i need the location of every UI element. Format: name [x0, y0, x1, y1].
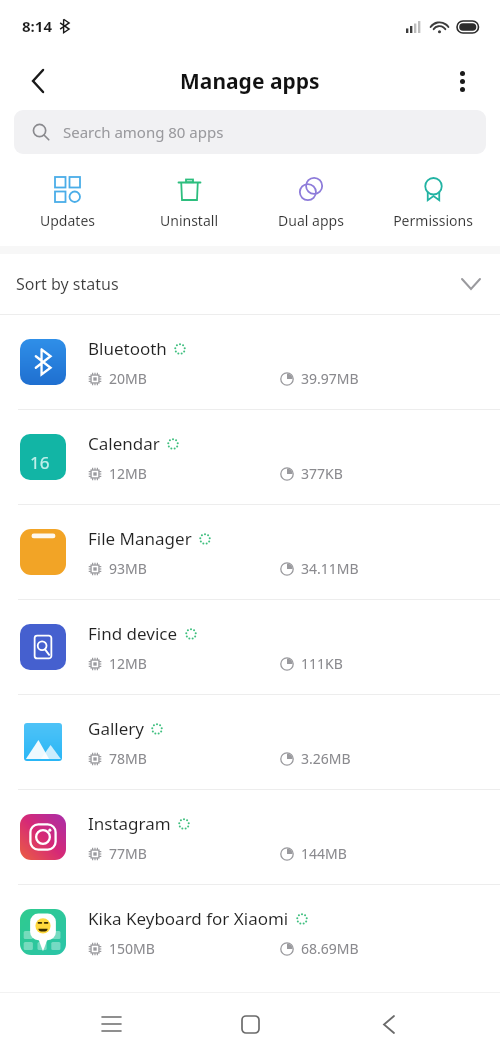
button[interactable]: File Manager — [0, 505, 500, 599]
button[interactable]: 16 — [0, 410, 500, 504]
staticText: Find device — [88, 622, 178, 645]
button[interactable]: Kika Keyboard for Xiaomi — [0, 885, 500, 979]
staticText: 93MB — [109, 559, 147, 578]
staticText: 39.97MB — [301, 369, 359, 388]
staticText: 12MB — [109, 464, 147, 483]
button[interactable]: Sort by status — [0, 254, 500, 314]
button[interactable]: Back — [14, 57, 62, 105]
button[interactable]: Bluetooth — [0, 315, 500, 409]
staticText: Bluetooth — [88, 337, 167, 360]
staticText: File Manager — [88, 527, 192, 550]
staticText: 377KB — [301, 464, 343, 483]
button[interactable]: Instagram — [0, 790, 500, 884]
staticText: 77MB — [109, 844, 147, 863]
staticText: Instagram — [88, 812, 171, 835]
button[interactable]: Back — [361, 996, 417, 1052]
staticText: Permissions — [393, 211, 473, 230]
staticText: 150MB — [109, 939, 155, 958]
staticText: 144MB — [301, 844, 347, 863]
staticText: Manage apps — [180, 67, 320, 96]
button[interactable]: Permissions — [378, 170, 488, 234]
staticText: 68.69MB — [301, 939, 359, 958]
staticText: 20MB — [109, 369, 147, 388]
staticText: Dual apps — [278, 211, 344, 230]
staticText: Gallery — [88, 717, 144, 740]
button[interactable]: Updates — [12, 170, 122, 234]
staticText: Kika Keyboard for Xiaomi — [88, 907, 289, 930]
staticText: Search among 80 apps — [63, 122, 224, 142]
staticText: 8:14 — [22, 16, 52, 36]
staticText: 111KB — [301, 654, 343, 673]
staticText: 34.11MB — [301, 559, 359, 578]
button[interactable]: Find device — [0, 600, 500, 694]
staticText: Calendar — [88, 432, 160, 455]
button[interactable]: More options — [438, 57, 486, 105]
staticText: 12MB — [109, 654, 147, 673]
button[interactable]: Recent apps — [83, 996, 139, 1052]
button[interactable]: Uninstall — [134, 170, 244, 234]
button[interactable]: Search among 80 apps — [14, 110, 486, 154]
button[interactable]: Dual apps — [256, 170, 366, 234]
staticText: Sort by status — [16, 273, 119, 295]
staticText: Uninstall — [160, 211, 218, 230]
button[interactable]: Home — [222, 996, 278, 1052]
staticText: 78MB — [109, 749, 147, 768]
staticText: 16 — [30, 451, 50, 474]
button[interactable]: Gallery — [0, 695, 500, 789]
staticText: Updates — [40, 211, 95, 230]
staticText: 3.26MB — [301, 749, 351, 768]
